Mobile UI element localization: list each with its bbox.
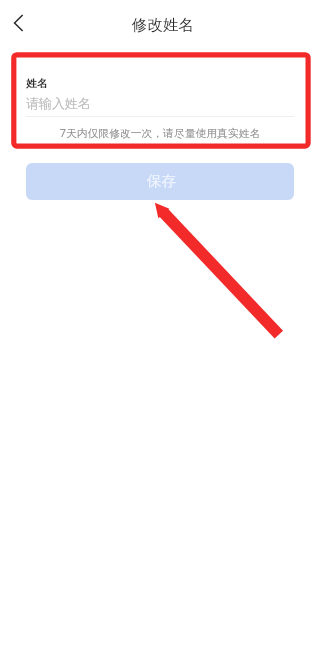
- staticText: 姓名: [26, 77, 48, 91]
- staticText: 保存: [147, 172, 177, 190]
- staticText: 修改姓名: [132, 15, 194, 35]
- staticText: 请输入姓名: [26, 95, 91, 111]
- staticText: 7天内仅限修改一次，请尽量使用真实姓名: [26, 125, 294, 140]
- button[interactable]: 保存: [26, 163, 294, 200]
- button[interactable]: 姓名: [26, 77, 294, 117]
- button[interactable]: Back: [0, 3, 38, 43]
